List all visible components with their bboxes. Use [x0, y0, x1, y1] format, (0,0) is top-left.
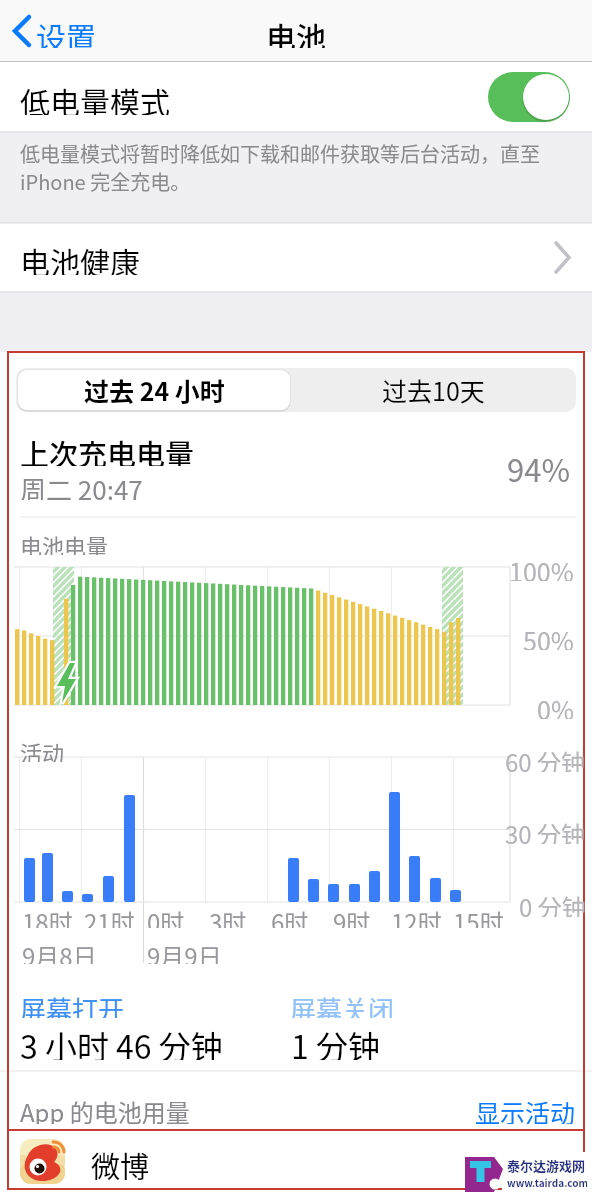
- staticText: 18时: [22, 904, 73, 928]
- button[interactable]: [16, 368, 292, 412]
- staticText: 12时: [391, 904, 442, 928]
- staticText: 15时: [453, 904, 504, 928]
- staticText: 3时: [209, 904, 247, 928]
- staticText: 3 小时 46 分钟: [20, 1022, 223, 1060]
- staticText: 21时: [84, 904, 135, 928]
- button[interactable]: 显示活动: [400, 1094, 576, 1124]
- staticText: 0时: [147, 904, 185, 928]
- staticText: iPhone 完全充电。: [20, 167, 191, 195]
- staticText: 泰尔达游戏网: [507, 1156, 586, 1175]
- staticText: 60 分钟: [505, 744, 586, 772]
- staticText: 低电量模式将暂时降低如下载和邮件获取等后台活动，直至: [20, 139, 540, 167]
- staticText: 过去10天: [382, 372, 485, 408]
- staticText: 过去 24 小时: [84, 372, 225, 408]
- staticText: 9月9日: [147, 938, 222, 964]
- staticText: 电池电量: [20, 529, 109, 555]
- staticText: 电池: [266, 14, 326, 48]
- button[interactable]: [8, 10, 98, 52]
- staticText: 活动: [20, 736, 65, 762]
- staticText: 30 分钟: [505, 816, 586, 844]
- staticText: 微博: [91, 1144, 150, 1180]
- staticText: 上次充电电量: [20, 432, 195, 466]
- staticText: www.tairda.com: [507, 1175, 587, 1189]
- staticText: 6时: [271, 904, 309, 928]
- staticText: 50%: [523, 622, 574, 650]
- staticText: 显示活动: [475, 1094, 576, 1124]
- staticText: 屏幕打开: [20, 990, 125, 1018]
- staticText: 9时: [333, 904, 371, 928]
- staticText: 94%: [507, 446, 570, 482]
- button[interactable]: [8, 1132, 584, 1189]
- staticText: 屏幕关闭: [290, 990, 395, 1018]
- staticText: 1 分钟: [291, 1022, 380, 1060]
- button[interactable]: [0, 223, 592, 292]
- staticText: 0%: [537, 691, 574, 719]
- staticText: 设置: [36, 14, 96, 48]
- staticText: 电池健康: [20, 239, 140, 275]
- button[interactable]: [292, 368, 576, 412]
- staticText: 100%: [509, 553, 574, 581]
- staticText: App 的电池用量: [20, 1094, 190, 1124]
- staticText: 9月8日: [22, 938, 97, 964]
- staticText: 周二 20:47: [20, 470, 143, 500]
- staticText: 0 分钟: [519, 889, 586, 917]
- staticText: 低电量模式: [20, 79, 170, 115]
- button[interactable]: [0, 62, 592, 132]
